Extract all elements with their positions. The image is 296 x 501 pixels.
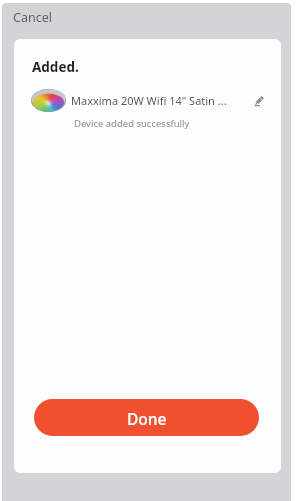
button[interactable]: Cancel xyxy=(7,3,58,32)
button[interactable]: Maxxima 20W Wifi 14" Satin ... xyxy=(14,88,281,112)
staticText: Maxxima 20W Wifi 14" Satin ... xyxy=(71,93,250,108)
button[interactable]: Edit device name xyxy=(248,89,270,111)
staticText: Device added successfully xyxy=(74,117,190,130)
button[interactable]: Done xyxy=(34,399,259,436)
staticText: Cancel xyxy=(13,9,52,26)
staticText: Done xyxy=(127,408,167,429)
staticText: Added. xyxy=(32,58,79,76)
